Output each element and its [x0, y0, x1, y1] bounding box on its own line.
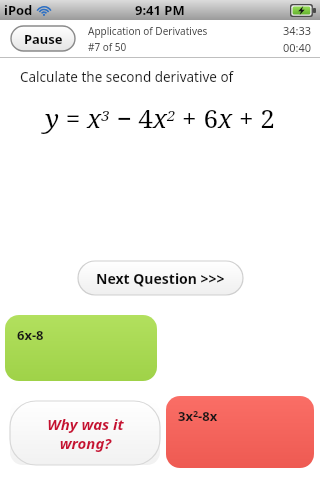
staticText: 9:41 PM: [135, 1, 185, 19]
staticText: Why was it wrong?: [47, 414, 124, 453]
staticText: #7 of 50: [88, 40, 127, 54]
staticText: iPod: [4, 1, 33, 19]
staticText: 3x2-8x: [178, 407, 218, 425]
staticText: y = x3 − 4x2 + 6x + 2: [45, 100, 275, 135]
staticText: 00:40: [283, 40, 312, 55]
button[interactable]: Next Question >>>: [78, 261, 243, 295]
button[interactable]: Pause: [11, 26, 75, 51]
staticText: 6x-8: [17, 326, 44, 344]
staticText: Next Question >>>: [96, 269, 225, 288]
staticText: Calculate the second derivative of: [20, 68, 234, 86]
button[interactable]: Answer 3x squared minus 8x: [166, 396, 314, 468]
staticText: Pause: [24, 30, 63, 48]
button[interactable]: Why was it wrong?: [10, 401, 160, 465]
staticText: Application of Derivatives: [88, 24, 208, 38]
button[interactable]: Answer 6x-8: [5, 315, 157, 381]
staticText: 34:33: [283, 23, 312, 38]
